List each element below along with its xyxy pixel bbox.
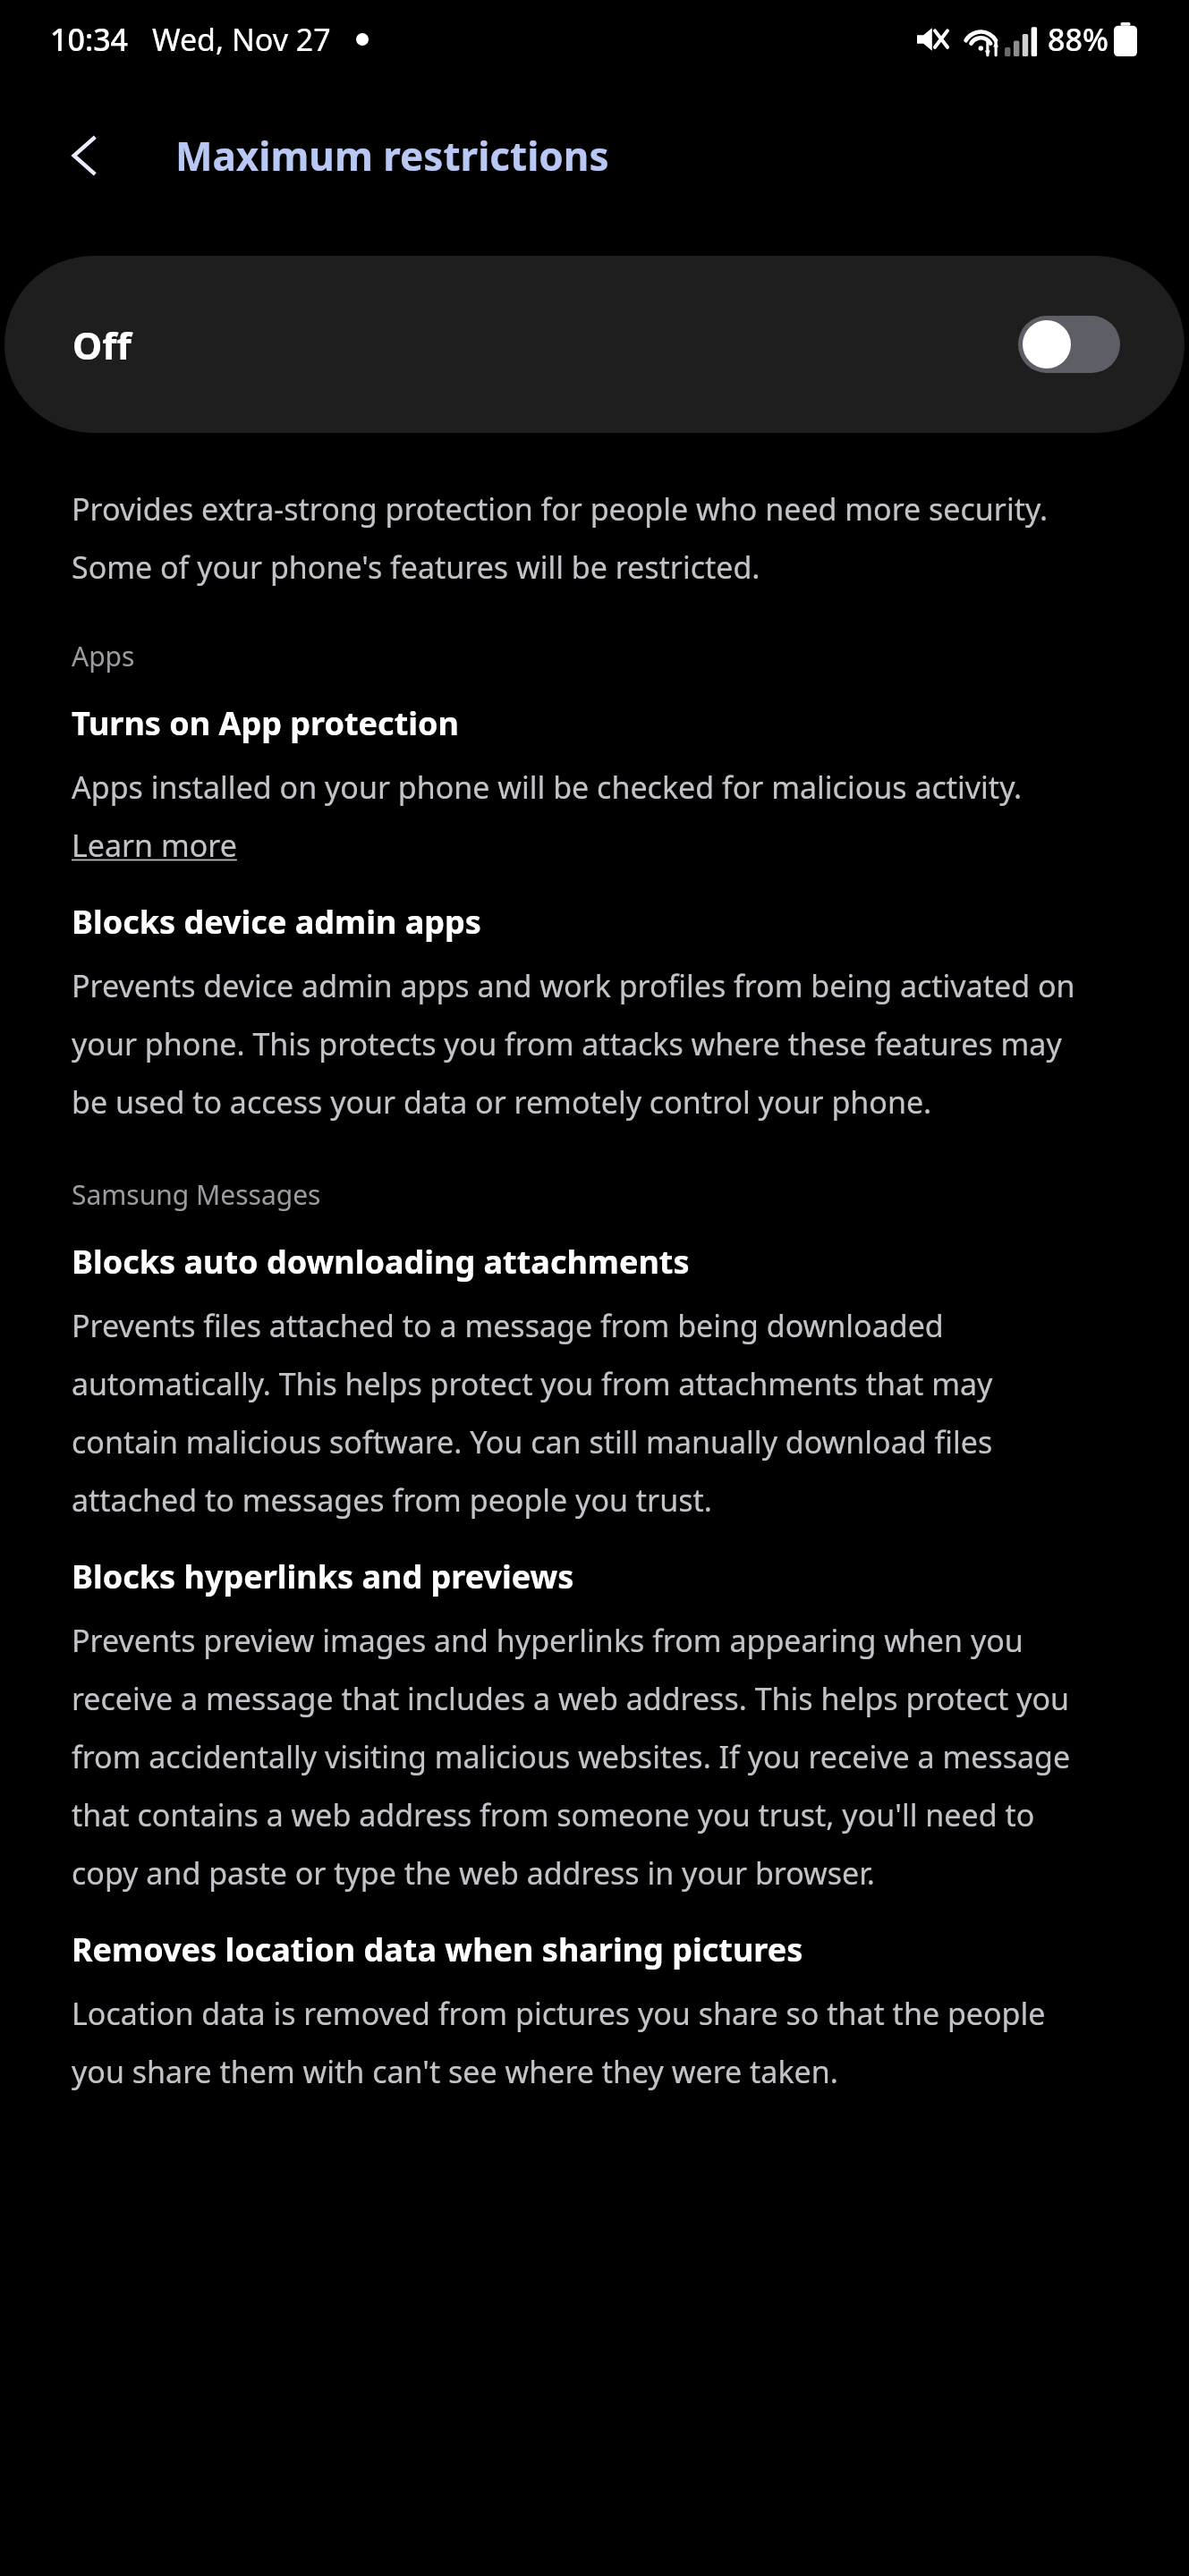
staticText: Blocks device admin apps	[72, 900, 481, 944]
staticText: Removes location data when sharing pictu…	[72, 1928, 803, 1971]
staticText: Prevents preview images and hyperlinks f…	[72, 1620, 1103, 1894]
staticText: Blocks auto downloading attachments	[72, 1240, 690, 1284]
staticText: Wed, Nov 27	[152, 19, 331, 60]
staticText: 88%	[1048, 19, 1108, 60]
staticText: Apps installed on your phone will be che…	[72, 767, 1103, 866]
staticText: Blocks hyperlinks and previews	[72, 1555, 574, 1598]
staticText: Turns on App protection	[72, 701, 459, 745]
staticText: Prevents files attached to a message fro…	[72, 1305, 1103, 1521]
staticText: Off	[72, 319, 132, 370]
staticText: Location data is removed from pictures y…	[72, 1993, 1103, 2092]
staticText: Provides extra-strong protection for peo…	[72, 488, 1103, 588]
staticText: Prevents device admin apps and work prof…	[72, 965, 1103, 1123]
button[interactable]: Back	[36, 106, 134, 205]
button[interactable]: Maximum restrictions toggle	[1018, 316, 1120, 373]
button[interactable]: Off	[4, 256, 1185, 433]
staticText: 10:34	[50, 19, 129, 60]
staticText: Maximum restrictions	[175, 129, 609, 182]
staticText: Apps	[72, 638, 135, 674]
staticText: Samsung Messages	[72, 1176, 321, 1213]
